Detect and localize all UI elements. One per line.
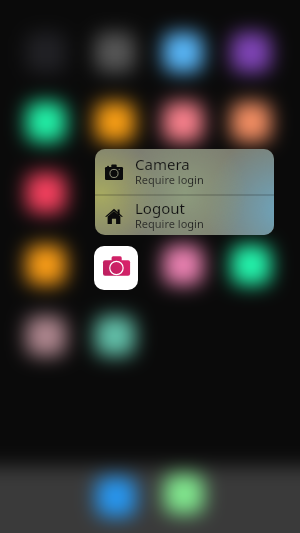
staticText: Logout xyxy=(135,198,185,218)
staticText: Require login xyxy=(135,216,204,231)
button[interactable]: Camera xyxy=(95,149,274,194)
staticText: Require login xyxy=(135,172,204,187)
staticText: Camera xyxy=(135,154,190,174)
button[interactable]: Camera xyxy=(94,246,138,290)
button[interactable]: Logout xyxy=(95,196,274,235)
